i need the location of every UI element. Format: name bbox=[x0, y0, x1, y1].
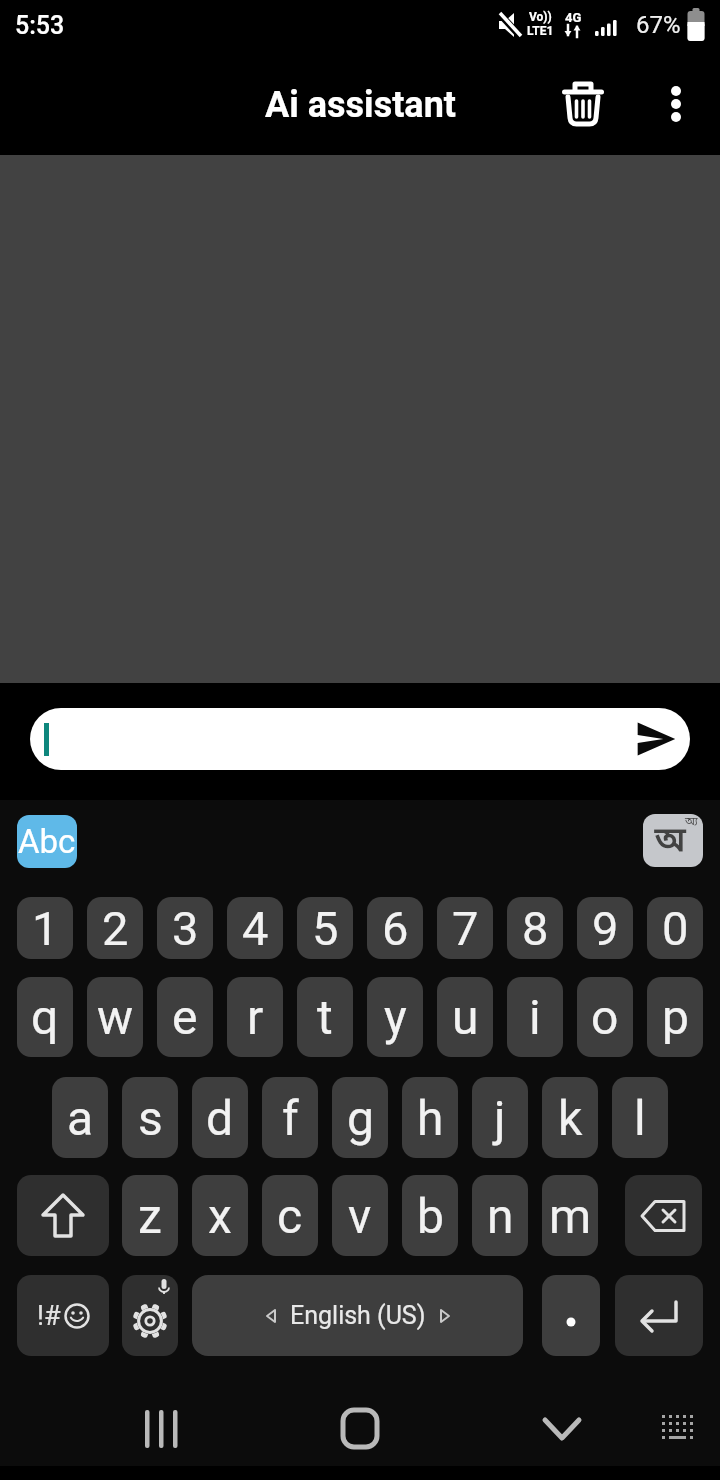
staticText: 4 bbox=[242, 901, 269, 956]
staticText: j bbox=[494, 1090, 506, 1146]
button[interactable]: 3 bbox=[157, 897, 213, 959]
button[interactable]: b bbox=[402, 1175, 458, 1256]
staticText: x bbox=[208, 1188, 232, 1244]
button[interactable] bbox=[648, 1398, 710, 1460]
staticText: u bbox=[452, 989, 479, 1045]
button[interactable]: s bbox=[122, 1077, 178, 1158]
button[interactable]: 0 bbox=[647, 897, 703, 959]
staticText: English (US) bbox=[290, 1301, 426, 1330]
staticText: z bbox=[138, 1188, 162, 1244]
staticText: p bbox=[662, 989, 689, 1045]
staticText: g bbox=[347, 1090, 374, 1146]
staticText: n bbox=[487, 1188, 514, 1244]
staticText: Vo)) bbox=[529, 10, 552, 24]
button[interactable]: f bbox=[262, 1077, 318, 1158]
button[interactable] bbox=[130, 1398, 192, 1460]
button[interactable] bbox=[542, 1275, 600, 1356]
button[interactable]: z bbox=[122, 1175, 178, 1256]
button[interactable] bbox=[625, 1175, 702, 1256]
staticText: !# bbox=[37, 1300, 61, 1332]
button[interactable]: Abc bbox=[17, 815, 77, 868]
staticText: 0 bbox=[662, 901, 689, 956]
staticText: h bbox=[417, 1090, 444, 1146]
staticText: e bbox=[172, 989, 198, 1045]
staticText: a bbox=[67, 1090, 94, 1146]
button[interactable]: h bbox=[402, 1077, 458, 1158]
staticText: d bbox=[206, 1090, 234, 1146]
button[interactable]: l bbox=[612, 1077, 668, 1158]
staticText: q bbox=[31, 989, 59, 1045]
button[interactable]: q bbox=[17, 977, 73, 1057]
staticText: 6 bbox=[382, 901, 409, 956]
staticText: r bbox=[247, 989, 264, 1045]
button[interactable]: 6 bbox=[367, 897, 423, 959]
button[interactable]: y bbox=[367, 977, 423, 1057]
button[interactable]: u bbox=[437, 977, 493, 1057]
staticText: m bbox=[549, 1188, 592, 1244]
button[interactable]: t bbox=[297, 977, 353, 1057]
button[interactable]: w bbox=[87, 977, 143, 1057]
button[interactable]: i bbox=[507, 977, 563, 1057]
staticText: y bbox=[384, 989, 407, 1045]
button[interactable]: c bbox=[262, 1175, 318, 1256]
button[interactable] bbox=[553, 70, 613, 130]
button[interactable]: 4 bbox=[227, 897, 283, 959]
button[interactable]: j bbox=[472, 1077, 528, 1158]
button[interactable]: !# bbox=[17, 1275, 109, 1356]
staticText: 4G bbox=[565, 10, 582, 25]
button[interactable] bbox=[30, 708, 690, 770]
button[interactable]: e bbox=[157, 977, 213, 1057]
staticText: f bbox=[282, 1090, 299, 1146]
staticText: w bbox=[97, 989, 134, 1045]
staticText: i bbox=[529, 989, 541, 1045]
button[interactable]: p bbox=[647, 977, 703, 1057]
button[interactable] bbox=[615, 1275, 703, 1356]
staticText: অ্য bbox=[685, 815, 698, 830]
staticText: LTE1 bbox=[527, 24, 554, 38]
button[interactable]: 8 bbox=[507, 897, 563, 959]
button[interactable]: 9 bbox=[577, 897, 633, 959]
staticText: l bbox=[634, 1090, 646, 1146]
staticText: v bbox=[348, 1188, 372, 1244]
button[interactable] bbox=[329, 1398, 391, 1460]
staticText: s bbox=[138, 1090, 163, 1146]
staticText: 3 bbox=[172, 901, 199, 956]
button[interactable]: d bbox=[192, 1077, 248, 1158]
button[interactable]: 5 bbox=[297, 897, 353, 959]
button[interactable] bbox=[531, 1398, 593, 1460]
staticText: o bbox=[591, 989, 619, 1045]
staticText: 1 bbox=[32, 901, 59, 956]
button[interactable]: v bbox=[332, 1175, 388, 1256]
staticText: b bbox=[417, 1188, 444, 1244]
staticText: 5 bbox=[312, 901, 339, 956]
button[interactable]: k bbox=[542, 1077, 598, 1158]
button[interactable]: x bbox=[192, 1175, 248, 1256]
button[interactable]: 2 bbox=[87, 897, 143, 959]
button[interactable]: r bbox=[227, 977, 283, 1057]
staticText: 7 bbox=[452, 901, 479, 956]
button[interactable] bbox=[17, 1175, 109, 1256]
staticText: 8 bbox=[522, 901, 549, 956]
staticText: অ bbox=[655, 820, 686, 865]
staticText: k bbox=[558, 1090, 583, 1146]
button[interactable]: অ bbox=[643, 814, 703, 867]
button[interactable]: 1 bbox=[17, 897, 73, 959]
button[interactable]: o bbox=[577, 977, 633, 1057]
staticText: 9 bbox=[592, 901, 619, 956]
staticText: 5:53 bbox=[15, 11, 65, 40]
button[interactable] bbox=[122, 1275, 178, 1356]
button[interactable]: g bbox=[332, 1077, 388, 1158]
staticText: c bbox=[277, 1188, 303, 1244]
staticText: t bbox=[317, 989, 333, 1045]
staticText: Abc bbox=[18, 822, 76, 861]
staticText: 67% bbox=[636, 11, 681, 39]
staticText: Ai assistant bbox=[265, 84, 456, 126]
button[interactable]: a bbox=[52, 1077, 108, 1158]
button[interactable]: n bbox=[472, 1175, 528, 1256]
button[interactable]: 7 bbox=[437, 897, 493, 959]
button[interactable] bbox=[656, 80, 696, 130]
staticText: 2 bbox=[102, 901, 129, 956]
button[interactable]: m bbox=[542, 1175, 598, 1256]
button[interactable]: English (US) bbox=[192, 1275, 523, 1356]
